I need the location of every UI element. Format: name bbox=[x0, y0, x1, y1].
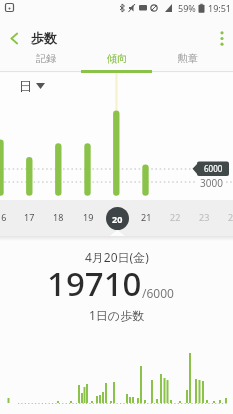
staticText: 19 bbox=[83, 211, 94, 223]
staticText: 22 bbox=[170, 211, 181, 223]
staticText: 歩数 bbox=[31, 30, 57, 46]
staticText: 4月20日(金) bbox=[85, 249, 149, 265]
staticText: 1日の歩数 bbox=[89, 307, 145, 323]
button[interactable] bbox=[0, 24, 28, 52]
staticText: 59% bbox=[178, 2, 196, 14]
staticText: 23 bbox=[199, 211, 210, 223]
staticText: 傾向 bbox=[107, 52, 127, 65]
staticText: 20 bbox=[112, 213, 123, 225]
staticText: 16 bbox=[0, 211, 7, 223]
button[interactable]: 20 bbox=[106, 207, 129, 230]
button[interactable]: 勲章 bbox=[152, 52, 223, 65]
staticText: 19:51 bbox=[208, 2, 232, 14]
staticText: 21 bbox=[141, 211, 152, 223]
staticText: 18 bbox=[53, 211, 64, 223]
button[interactable]: 日 bbox=[19, 78, 45, 94]
staticText: 日 bbox=[19, 78, 32, 94]
button[interactable] bbox=[211, 24, 233, 52]
staticText: 19710 bbox=[47, 261, 142, 306]
staticText: 17 bbox=[24, 211, 35, 223]
staticText: 24 bbox=[228, 211, 233, 223]
staticText: 6000 bbox=[204, 163, 223, 174]
button[interactable]: 傾向 bbox=[81, 52, 152, 65]
staticText: 勲章 bbox=[178, 52, 198, 65]
button[interactable]: 記録 bbox=[10, 52, 81, 65]
staticText: 記録 bbox=[36, 52, 56, 65]
staticText: 3000 bbox=[200, 176, 223, 190]
staticText: /6000 bbox=[142, 285, 174, 301]
